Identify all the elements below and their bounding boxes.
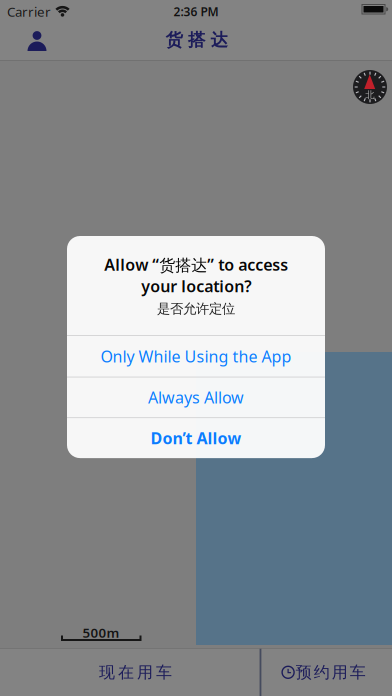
staticText: 约 — [314, 662, 330, 682]
staticText: 500m — [82, 624, 119, 641]
staticText: 车 — [156, 662, 172, 682]
button[interactable]: Don’t Allow — [67, 418, 325, 458]
button[interactable]: 预 — [262, 649, 392, 696]
staticText: 2:36 PM — [173, 3, 218, 19]
staticText: Allow “货搭达” to access your location? — [104, 254, 288, 297]
staticText: 达 — [210, 29, 227, 51]
button[interactable]: Always Allow — [67, 377, 325, 417]
button[interactable]: 现 — [0, 649, 260, 696]
button[interactable]: Compass — [353, 70, 387, 104]
staticText: 是否允许定位 — [157, 301, 235, 317]
staticText: 预 — [296, 662, 312, 682]
staticText: 现 — [99, 662, 115, 682]
staticText: Carrier — [7, 3, 51, 20]
staticText: Don’t Allow — [150, 427, 241, 449]
staticText: 搭 — [188, 29, 205, 51]
staticText: 货 — [165, 29, 182, 51]
staticText: 在 — [118, 662, 134, 682]
staticText: 用 — [137, 662, 153, 682]
button[interactable]: Only While Using the App — [67, 336, 325, 377]
staticText: 用 — [332, 662, 348, 682]
button[interactable]: My account — [15, 24, 59, 58]
staticText: 车 — [350, 662, 366, 682]
staticText: 北 — [365, 89, 374, 101]
staticText: Always Allow — [148, 387, 244, 408]
staticText: Only While Using the App — [100, 346, 291, 367]
